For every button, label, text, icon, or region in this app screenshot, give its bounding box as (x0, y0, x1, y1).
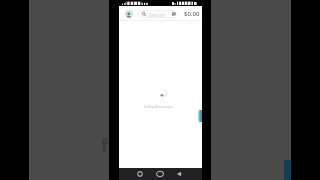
button[interactable]: Account (125, 10, 133, 18)
button[interactable]: Open side panel (198, 110, 202, 122)
button[interactable]: Overview (135, 169, 145, 179)
button[interactable]: Home (155, 169, 165, 179)
staticText: Finding offers near you... (118, 105, 201, 109)
staticText: Search (149, 11, 166, 18)
staticText: $0.00 (184, 10, 200, 18)
staticText: ffe (101, 134, 125, 157)
button[interactable]: Search (137, 10, 177, 18)
button[interactable]: Back (174, 169, 184, 179)
